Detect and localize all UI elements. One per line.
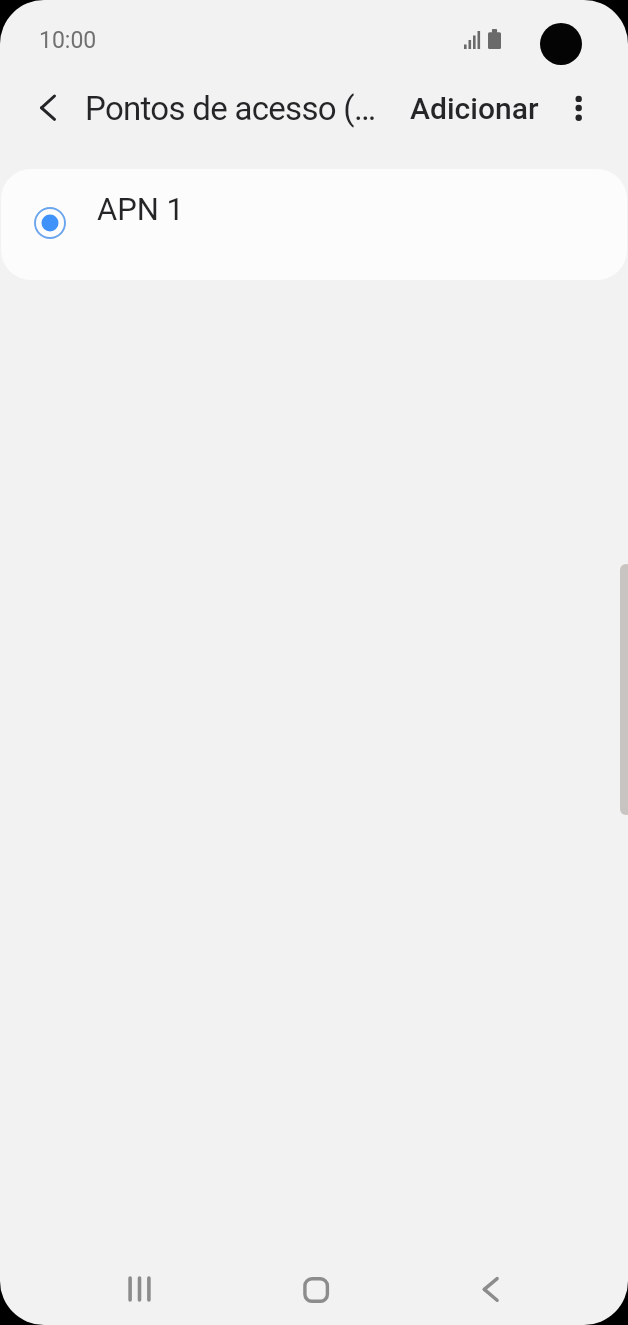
staticText: Adicionar: [410, 91, 539, 126]
button[interactable]: More options: [555, 84, 603, 132]
staticText: Pontos de acesso (…: [85, 89, 377, 128]
button[interactable]: Back: [449, 1249, 529, 1325]
staticText: APN 1: [97, 191, 185, 227]
button[interactable]: Recent apps: [100, 1249, 180, 1325]
button[interactable]: Adicionar: [400, 84, 549, 132]
button[interactable]: Back: [22, 84, 70, 132]
staticText: 10:00: [39, 27, 97, 54]
button[interactable]: Home: [275, 1249, 355, 1325]
button[interactable]: APN 1: [1, 169, 627, 280]
